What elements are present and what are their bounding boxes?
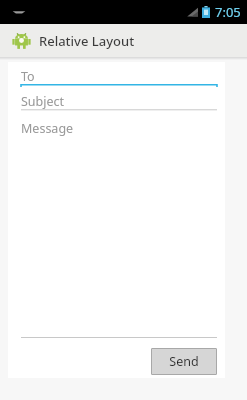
staticText: Message	[21, 120, 74, 137]
staticText: To	[21, 68, 35, 84]
staticText: Send	[169, 353, 199, 370]
staticText: Relative Layout	[39, 32, 135, 50]
other: App icon	[12, 31, 31, 50]
staticText: 7:05	[215, 3, 241, 21]
button[interactable]: Send	[151, 348, 217, 375]
button[interactable]: Subject	[21, 93, 217, 112]
button[interactable]: App icon	[0, 24, 247, 57]
staticText: Subject	[21, 93, 65, 109]
button[interactable]: To	[21, 68, 217, 87]
button[interactable]: Message	[21, 118, 217, 339]
